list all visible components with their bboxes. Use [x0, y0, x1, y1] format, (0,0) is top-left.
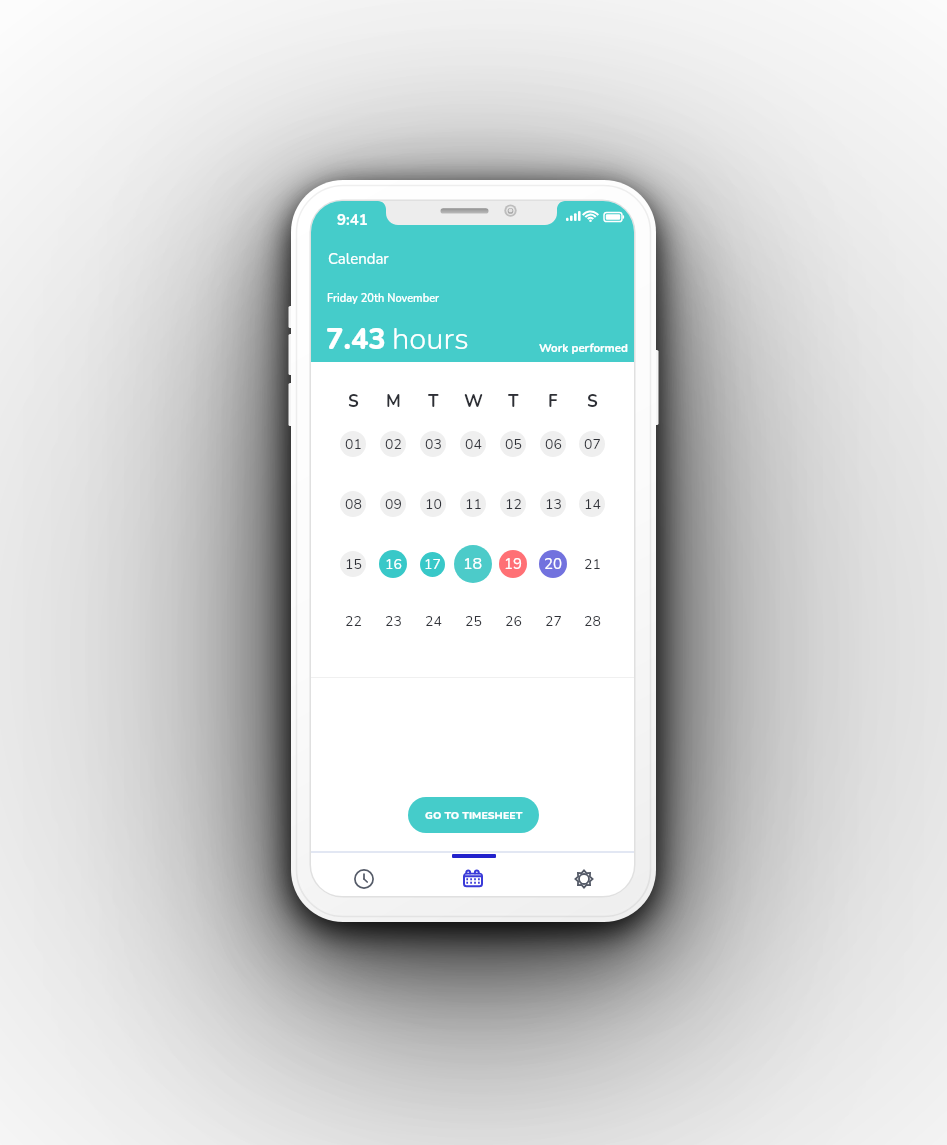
button[interactable]: 22 [340, 608, 366, 634]
staticText: T [428, 390, 439, 413]
staticText: 24 [425, 612, 442, 631]
button[interactable]: 09 [380, 491, 406, 517]
staticText: 20 [544, 554, 563, 574]
staticText: 18 [463, 553, 483, 575]
staticText: 28 [584, 612, 601, 631]
staticText: Friday 20th November [327, 291, 440, 306]
button[interactable]: 07 [579, 431, 605, 457]
staticText: 7.43 [326, 320, 386, 360]
staticText: 14 [584, 495, 601, 514]
button[interactable]: 11 [460, 491, 486, 517]
staticText: Work performed [539, 340, 628, 356]
staticText: 27 [545, 612, 562, 631]
staticText: 10 [425, 495, 442, 514]
button[interactable]: 01 [340, 431, 366, 457]
staticText: 01 [345, 435, 362, 454]
button[interactable]: 18 [454, 545, 492, 583]
staticText: 9:41 [337, 210, 368, 230]
button[interactable]: GO TO TIMESHEET [408, 797, 539, 833]
staticText: M [386, 390, 401, 413]
button[interactable]: Calendar [447, 857, 499, 896]
staticText: 07 [584, 435, 601, 454]
staticText: 15 [345, 555, 362, 574]
button[interactable]: 16 [379, 550, 407, 578]
staticText: 17 [424, 555, 441, 574]
staticText: T [508, 390, 519, 413]
button[interactable]: 08 [340, 491, 366, 517]
staticText: 25 [465, 612, 482, 631]
button[interactable]: 06 [540, 431, 566, 457]
button[interactable]: Time tracker [338, 857, 390, 896]
button[interactable]: 12 [500, 491, 526, 517]
button[interactable]: 23 [380, 608, 406, 634]
staticText: S [587, 390, 598, 413]
button[interactable]: 28 [579, 608, 605, 634]
staticText: 12 [505, 495, 522, 514]
staticText: Calendar [328, 249, 389, 269]
staticText: 03 [425, 435, 442, 454]
button[interactable]: 26 [500, 608, 526, 634]
staticText: 21 [584, 555, 601, 574]
button[interactable]: 27 [540, 608, 566, 634]
button[interactable]: 03 [420, 431, 446, 457]
button[interactable]: 19 [499, 550, 527, 578]
staticText: S [348, 390, 359, 413]
button[interactable]: 13 [540, 491, 566, 517]
button[interactable]: 10 [420, 491, 446, 517]
button[interactable]: Settings [558, 857, 610, 896]
staticText: 13 [545, 495, 562, 514]
button[interactable]: 17 [420, 552, 445, 577]
staticText: 19 [504, 554, 523, 574]
staticText: 02 [385, 435, 402, 454]
staticText: 06 [545, 435, 562, 454]
staticText: 04 [465, 435, 482, 454]
staticText: 26 [505, 612, 522, 631]
button[interactable]: 20 [539, 550, 567, 578]
staticText: hours [392, 318, 469, 360]
staticText: 22 [345, 612, 362, 631]
staticText: W [464, 390, 483, 413]
staticText: 08 [345, 495, 362, 514]
button[interactable]: 21 [579, 551, 605, 577]
staticText: 16 [385, 555, 402, 574]
button[interactable]: 25 [460, 608, 486, 634]
staticText: 23 [385, 612, 402, 631]
button[interactable]: 24 [420, 608, 446, 634]
button[interactable]: 04 [460, 431, 486, 457]
staticText: 11 [465, 495, 482, 514]
button[interactable]: 15 [340, 551, 366, 577]
button[interactable]: 14 [579, 491, 605, 517]
staticText: 05 [505, 435, 522, 454]
button[interactable]: 02 [380, 431, 406, 457]
staticText: F [548, 390, 558, 413]
button[interactable]: 05 [500, 431, 526, 457]
staticText: GO TO TIMESHEET [425, 808, 523, 822]
staticText: 09 [385, 495, 402, 514]
